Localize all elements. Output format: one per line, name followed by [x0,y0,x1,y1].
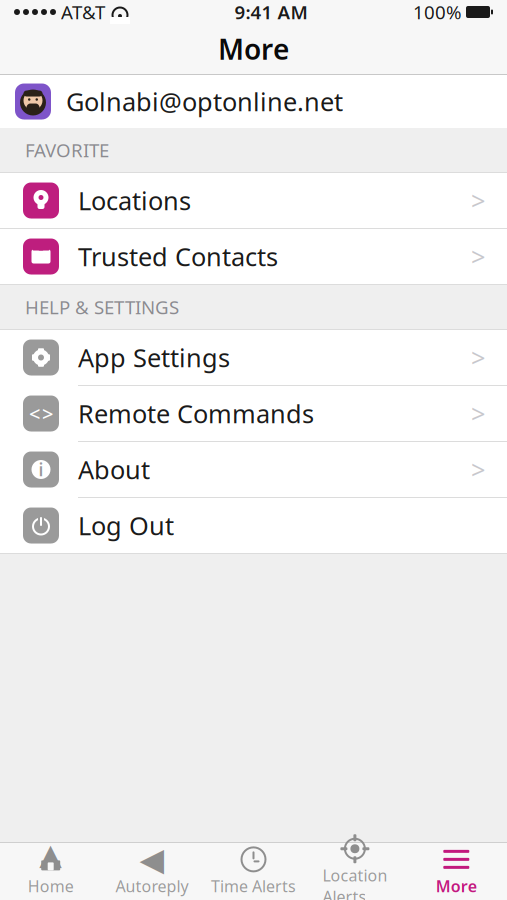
button[interactable]: Locations [0,173,507,228]
staticText: > [471,453,485,486]
staticText: Locations [78,184,191,217]
staticText: More [218,30,289,68]
button[interactable]: Golnabi@optonline.net [0,75,507,128]
staticText: Remote Commands [78,397,314,430]
button[interactable]: App Settings [0,330,507,385]
staticText: > [471,341,485,374]
staticText: 100% [413,0,462,24]
staticText: About [78,453,150,486]
button[interactable]: < [0,386,507,441]
staticText: > [471,240,485,273]
staticText: FAVORITE [25,138,109,162]
staticText: < [29,400,40,427]
button[interactable]: More [406,843,507,900]
staticText: Time Alerts [211,875,296,897]
staticText: Trusted Contacts [78,240,278,273]
staticText: More [436,875,477,897]
staticText: > [471,184,485,217]
button[interactable]: Time Alerts [203,843,304,900]
staticText: App Settings [78,341,230,374]
button[interactable]: ◀ [101,843,203,900]
button[interactable]: Location Alerts [304,843,406,900]
staticText: ◀ [140,841,165,877]
staticText: > [471,397,485,430]
staticText: > [42,400,53,427]
button[interactable]: Trusted Contacts [0,229,507,284]
staticText: i [38,458,43,481]
staticText: HELP & SETTINGS [25,295,179,319]
staticText: AT&T [61,0,105,24]
staticText: Location Alerts [322,865,387,900]
staticText: Log Out [78,509,174,542]
button[interactable]: ▲ [0,843,101,900]
staticText: Autoreply [116,875,189,897]
staticText: 9:41 AM [234,0,307,24]
staticText: ▲ [39,838,62,871]
button[interactable]: i [0,442,507,497]
button[interactable]: Log Out [0,498,507,553]
staticText: Golnabi@optonline.net [66,85,343,118]
staticText: Home [28,875,74,897]
